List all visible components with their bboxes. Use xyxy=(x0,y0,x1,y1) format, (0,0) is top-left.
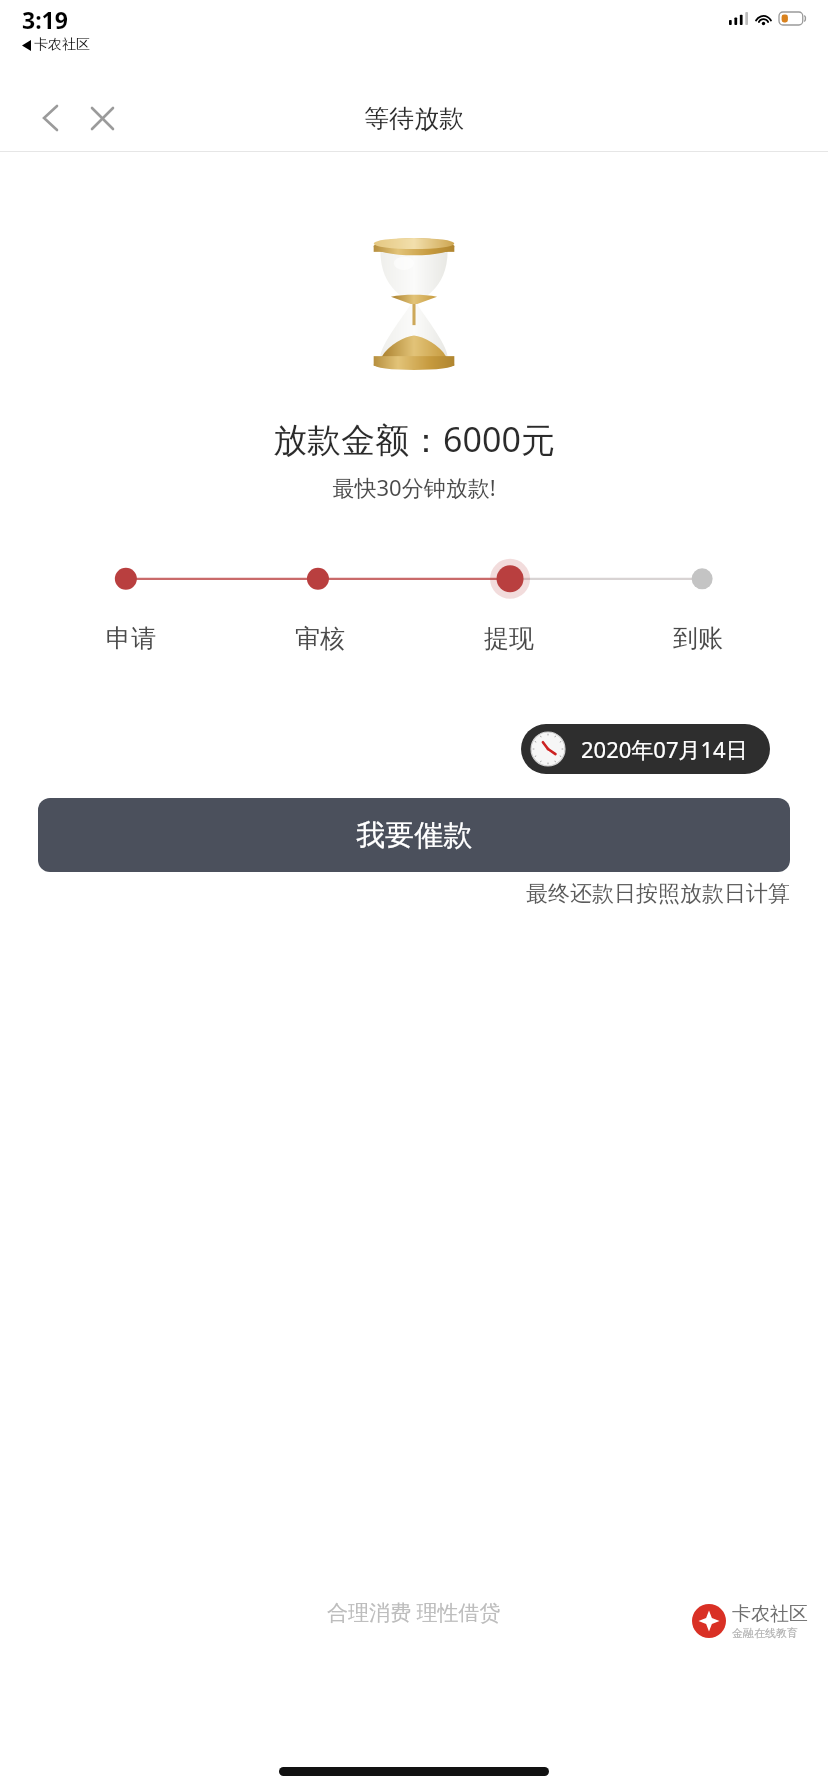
staticText: 合理消费 理性借贷 xyxy=(327,1598,501,1627)
staticText: 审核 xyxy=(295,623,345,654)
staticText: 金融在线教育 xyxy=(732,1626,798,1640)
staticText: 等待放款 xyxy=(364,103,464,134)
staticText: 最快30分钟放款! xyxy=(332,472,496,502)
staticText: 3:19 xyxy=(22,4,68,35)
staticText: 2020年07月14日 xyxy=(581,734,748,764)
staticText: 卡农社区 xyxy=(34,36,90,54)
staticText: 我要催款 xyxy=(356,817,472,854)
button[interactable]: Close xyxy=(80,96,124,140)
staticText: 放款金额：6000元 xyxy=(273,416,555,462)
button[interactable]: 2020年07月14日 xyxy=(521,724,770,774)
button[interactable]: 我要催款 xyxy=(38,798,790,872)
button[interactable]: Back xyxy=(28,96,72,140)
staticText: 最终还款日按照放款日计算 xyxy=(526,880,790,908)
staticText: 到账 xyxy=(673,623,723,654)
staticText: 申请 xyxy=(106,623,156,654)
staticText: 提现 xyxy=(484,623,534,654)
staticText: 卡农社区 xyxy=(732,1602,808,1626)
